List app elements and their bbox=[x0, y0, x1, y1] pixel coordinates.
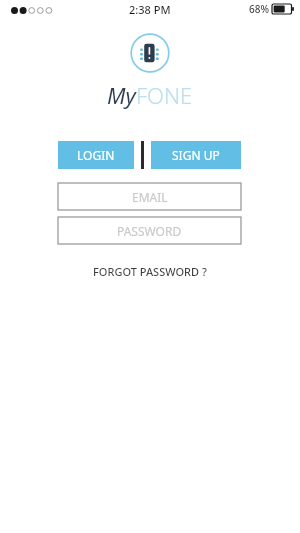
staticText: PASSWORD bbox=[117, 223, 182, 239]
button[interactable]: FORGOT PASSWORD ? bbox=[0, 262, 300, 280]
other: MyFONE logo bbox=[130, 33, 170, 73]
button[interactable]: EMAIL bbox=[58, 183, 241, 210]
staticText: SIGN UP bbox=[172, 147, 220, 163]
button[interactable]: SIGN UP bbox=[151, 141, 241, 169]
button[interactable]: LOGIN bbox=[58, 141, 134, 169]
staticText: 68% bbox=[249, 2, 269, 16]
staticText: FONE bbox=[136, 80, 193, 110]
staticText: 2:38 PM bbox=[129, 2, 171, 17]
button[interactable]: PASSWORD bbox=[58, 217, 241, 244]
staticText: FORGOT PASSWORD ? bbox=[93, 264, 207, 279]
staticText: EMAIL bbox=[132, 189, 168, 205]
staticText: LOGIN bbox=[77, 147, 115, 163]
staticText: My bbox=[107, 80, 136, 110]
